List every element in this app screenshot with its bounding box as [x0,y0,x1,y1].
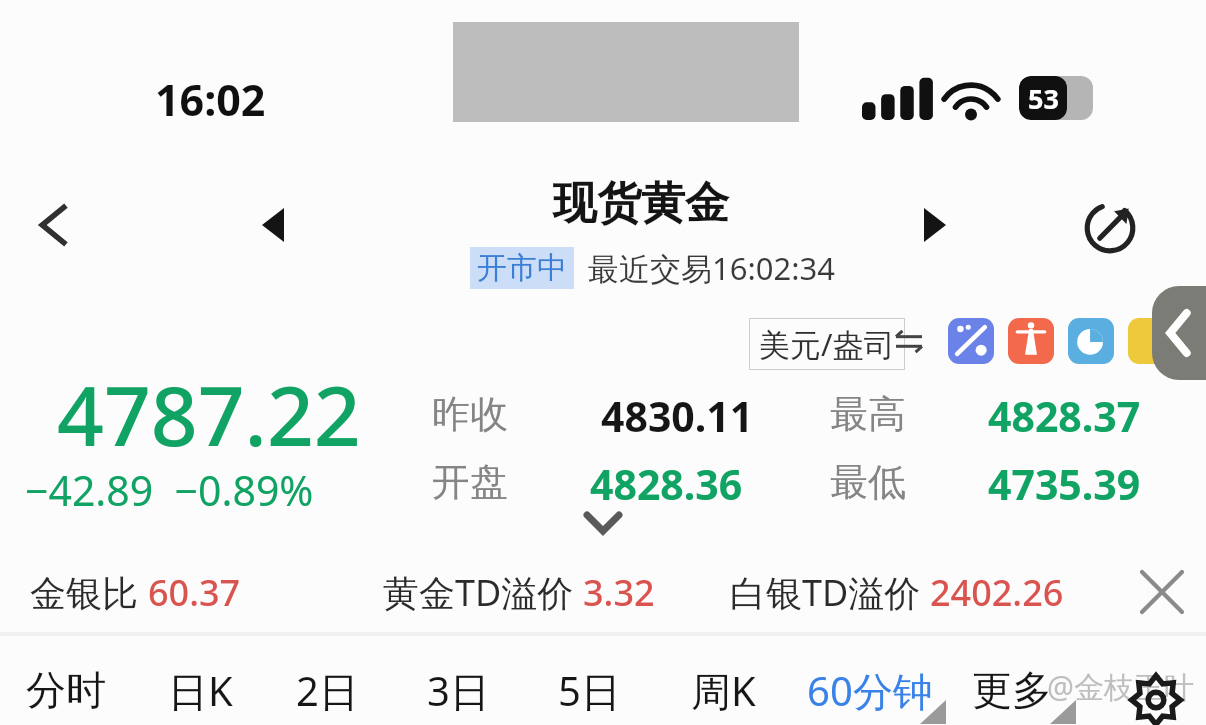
staticText: 5日 [558,663,621,718]
staticText: 4787.22 [57,358,361,470]
staticText: 53 [1028,80,1059,117]
staticText: @金枝玉叶 [1047,666,1194,707]
button[interactable]: Percent [948,318,994,364]
staticText: 现货黄金 [553,176,729,231]
button[interactable]: 开市中 [477,249,567,287]
staticText: 60.37 [148,568,241,617]
staticText: 3.32 [583,568,655,617]
staticText: 开市中 [477,249,567,287]
button[interactable]: 60分钟 [790,655,950,725]
staticText: 分时 [26,665,106,715]
staticText: −42.89 −0.89% [25,462,314,518]
button[interactable]: 更多 [957,655,1067,725]
staticText: 16:02 [155,70,266,129]
staticText: 白银TD溢价 [730,568,930,617]
staticText: 4828.36 [590,456,743,512]
button[interactable]: Switch unit [890,322,928,360]
button[interactable]: 分时 [11,655,121,725]
button[interactable]: Open panel [1152,286,1206,380]
button[interactable]: Next [900,190,970,260]
button[interactable]: 周K [668,655,778,725]
button[interactable]: 白银TD溢价 [730,568,1064,617]
staticText: 更多 [972,665,1052,715]
staticText: 金银比 [30,568,148,617]
staticText: 黄金TD溢价 [383,568,583,617]
staticText: 3日 [427,663,490,718]
staticText: 2日 [296,663,359,718]
staticText: 4735.39 [988,456,1141,512]
staticText: 周K [691,663,756,718]
button[interactable]: 日K [145,655,255,725]
button[interactable]: Close [1130,560,1194,624]
button[interactable]: Chart [1068,318,1114,364]
button[interactable]: 美元/盎司 [759,323,895,365]
button[interactable]: 3日 [403,655,513,725]
staticText: 最低 [830,458,906,506]
staticText: 美元/盎司 [759,323,895,365]
staticText: 最近交易16:02:34 [588,247,836,289]
staticText: 最高 [830,390,906,438]
button[interactable]: More [1128,318,1174,364]
staticText: 2402.26 [930,568,1064,617]
button[interactable]: 2日 [272,655,382,725]
button[interactable]: 5日 [534,655,644,725]
staticText: 昨收 [432,390,508,438]
button[interactable]: Tower [1008,318,1054,364]
staticText: 4828.37 [988,388,1141,444]
button[interactable]: Previous [238,190,308,260]
staticText: 60分钟 [807,663,933,718]
button[interactable]: Back [18,188,92,262]
button[interactable]: Expand [572,500,634,546]
staticText: 开盘 [432,458,508,506]
staticText: 4830.11 [601,388,754,444]
button[interactable]: Refresh [1070,188,1150,268]
staticText: 日K [168,663,233,718]
button[interactable]: 金银比 [30,568,241,617]
button[interactable]: 黄金TD溢价 [383,568,655,617]
button[interactable]: Settings [1118,662,1194,725]
